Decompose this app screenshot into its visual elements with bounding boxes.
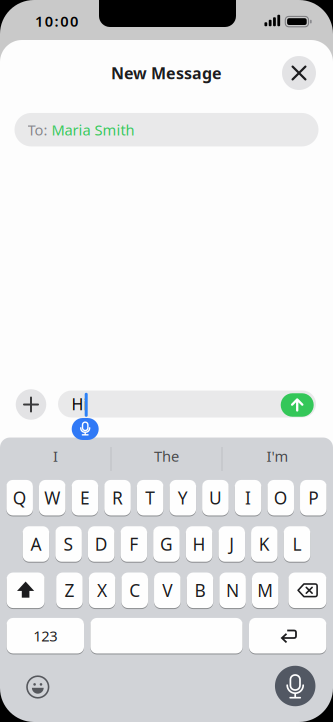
staticText: 10:00 — [35, 11, 78, 31]
button[interactable] — [249, 617, 326, 654]
staticText: Q — [13, 486, 27, 509]
staticText: D — [95, 532, 108, 555]
staticText: O — [274, 486, 288, 509]
staticText: Maria Smith — [51, 120, 134, 139]
staticText: I — [245, 486, 251, 509]
button[interactable]: E — [72, 479, 98, 516]
button[interactable] — [27, 676, 49, 698]
button[interactable] — [288, 572, 326, 608]
button[interactable]: N — [219, 572, 246, 608]
staticText: P — [308, 486, 318, 509]
button[interactable]: Z — [56, 572, 83, 608]
staticText: R — [112, 486, 123, 509]
button[interactable]: F — [120, 526, 147, 562]
button[interactable] — [275, 666, 315, 706]
staticText: New Message — [111, 62, 222, 84]
button[interactable] — [16, 389, 46, 420]
staticText: M — [257, 579, 273, 602]
button[interactable] — [90, 617, 243, 654]
button[interactable]: C — [121, 572, 148, 608]
button[interactable] — [281, 393, 314, 417]
staticText: Hi — [71, 393, 87, 415]
button[interactable]: I — [235, 479, 261, 516]
button[interactable]: S — [55, 526, 82, 562]
staticText: C — [129, 579, 140, 602]
button[interactable]: L — [284, 526, 310, 562]
button[interactable]: 123 — [7, 617, 84, 654]
staticText: S — [64, 532, 74, 555]
button[interactable]: P — [300, 479, 327, 516]
staticText: V — [162, 579, 172, 602]
staticText: I — [53, 446, 58, 466]
button[interactable]: M — [252, 572, 278, 608]
button[interactable]: The — [114, 436, 218, 476]
button[interactable] — [7, 572, 45, 608]
button[interactable]: V — [154, 572, 181, 608]
button[interactable]: R — [104, 479, 131, 516]
staticText: K — [259, 532, 270, 555]
staticText: To: — [27, 120, 47, 139]
button[interactable]: J — [218, 526, 245, 562]
staticText: F — [129, 532, 138, 555]
staticText: J — [229, 532, 234, 555]
button[interactable]: I'm — [225, 436, 329, 476]
staticText: A — [30, 532, 41, 555]
staticText: Y — [178, 486, 188, 509]
button[interactable]: B — [187, 572, 213, 608]
staticText: L — [292, 532, 301, 555]
staticText: H — [193, 532, 206, 555]
staticText: T — [145, 486, 155, 509]
staticText: B — [194, 579, 205, 602]
button[interactable]: I — [3, 436, 107, 476]
button[interactable] — [282, 56, 316, 90]
staticText: E — [80, 486, 90, 509]
button[interactable]: T — [137, 479, 163, 516]
button[interactable]: X — [89, 572, 115, 608]
button[interactable]: H — [186, 526, 212, 562]
button[interactable]: To: — [14, 113, 318, 146]
staticText: U — [209, 486, 222, 509]
button[interactable]: W — [39, 479, 66, 516]
staticText: 123 — [33, 626, 57, 645]
staticText: G — [160, 532, 173, 555]
staticText: I'm — [266, 446, 288, 466]
button[interactable]: A — [23, 526, 49, 562]
button[interactable]: Hi — [58, 390, 316, 417]
button[interactable]: O — [267, 479, 294, 516]
button[interactable]: Y — [169, 479, 196, 516]
button[interactable]: Q — [6, 479, 33, 516]
button[interactable]: U — [202, 479, 229, 516]
staticText: X — [97, 579, 107, 602]
button[interactable] — [72, 418, 99, 440]
staticText: The — [154, 446, 179, 466]
staticText: W — [44, 486, 60, 509]
button[interactable]: G — [153, 526, 180, 562]
button[interactable]: D — [88, 526, 114, 562]
staticText: Z — [64, 579, 74, 602]
staticText: N — [226, 579, 239, 602]
button[interactable]: K — [251, 526, 278, 562]
